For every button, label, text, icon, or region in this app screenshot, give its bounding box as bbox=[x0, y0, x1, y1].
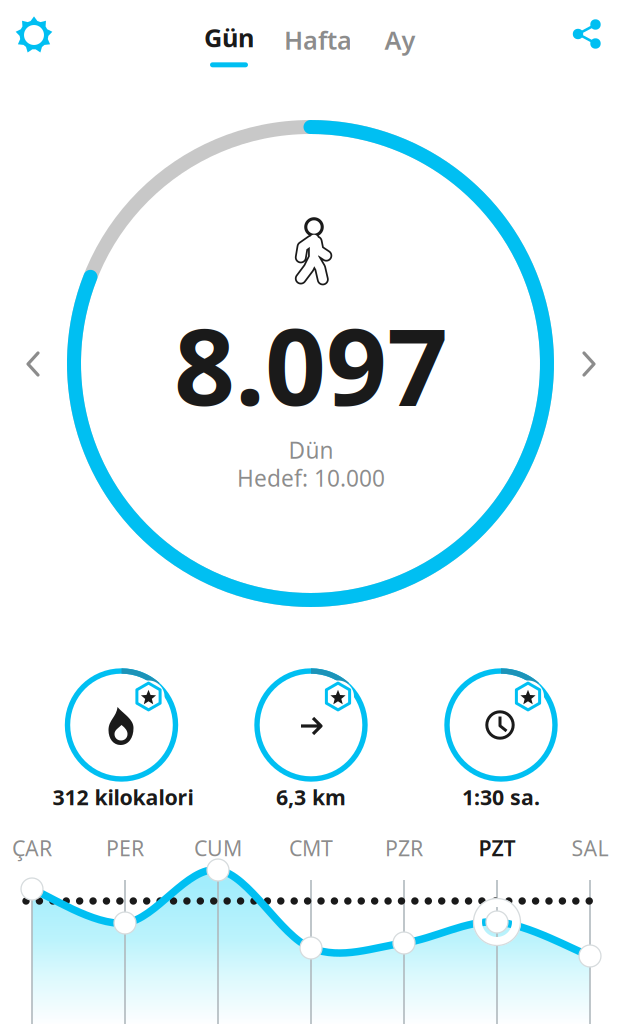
staticText: PZR bbox=[385, 834, 423, 862]
staticText: Gün bbox=[204, 21, 254, 54]
staticText: SAL bbox=[571, 834, 608, 862]
staticText: 312 kilokalori bbox=[52, 783, 193, 811]
staticText: Dün bbox=[288, 435, 333, 465]
staticText: CUM bbox=[194, 834, 242, 862]
staticText: PZT bbox=[478, 834, 515, 862]
staticText: 6,3 km bbox=[276, 783, 346, 811]
button[interactable]: Settings bbox=[5, 6, 63, 64]
button[interactable]: Hafta bbox=[270, 8, 366, 72]
button[interactable]: Gün bbox=[181, 12, 277, 76]
staticText: 1:30 sa. bbox=[462, 783, 540, 811]
staticText: Ay bbox=[384, 23, 415, 57]
button[interactable]: Previous day bbox=[5, 336, 61, 392]
button[interactable]: Ay bbox=[362, 8, 438, 72]
staticText: CMT bbox=[289, 834, 333, 862]
staticText: ÇAR bbox=[12, 834, 52, 862]
staticText: Hafta bbox=[284, 23, 352, 57]
staticText: Hedef: 10.000 bbox=[237, 463, 385, 493]
staticText: 8.097 bbox=[174, 293, 448, 435]
button[interactable]: Next day bbox=[561, 336, 617, 392]
staticText: PER bbox=[106, 834, 144, 862]
button[interactable]: Share bbox=[558, 5, 616, 63]
